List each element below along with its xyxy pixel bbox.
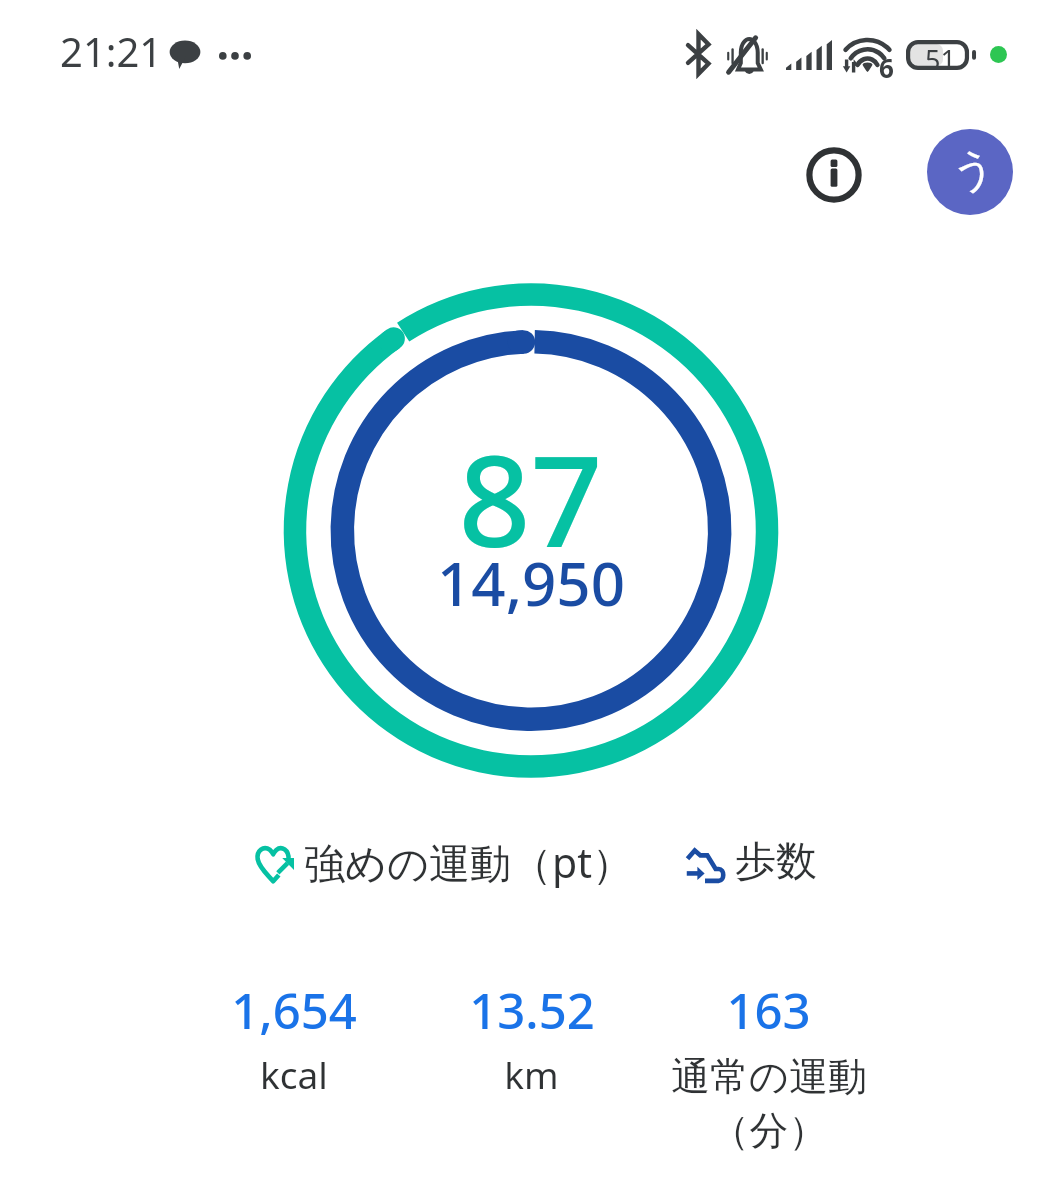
staticText: 21:21 — [60, 24, 163, 78]
staticText: う — [951, 143, 997, 198]
button[interactable]: Daily activity goals — [283, 283, 779, 779]
staticText: kcal — [260, 1049, 328, 1099]
button[interactable]: Information — [794, 135, 874, 215]
staticText: 14,950 — [437, 542, 625, 624]
button[interactable]: 163 — [650, 977, 887, 1156]
button[interactable]: Account — [927, 129, 1013, 215]
staticText: 通常の運動 （分） — [671, 1052, 867, 1156]
staticText: 13.52 — [469, 977, 595, 1044]
button[interactable]: 歩数 — [686, 836, 817, 888]
staticText: km — [504, 1049, 559, 1099]
staticText: 強めの運動（pt） — [304, 834, 633, 890]
staticText: 歩数 — [735, 836, 817, 888]
button[interactable]: 13.52 — [413, 977, 650, 1099]
staticText: 87 — [458, 412, 603, 584]
button[interactable]: 強めの運動（pt） — [256, 834, 633, 890]
button[interactable]: 1,654 — [175, 977, 413, 1099]
staticText: 51 — [925, 41, 956, 78]
staticText: 1,654 — [231, 977, 357, 1044]
staticText: 163 — [726, 977, 811, 1044]
staticText: 6 — [879, 50, 894, 85]
